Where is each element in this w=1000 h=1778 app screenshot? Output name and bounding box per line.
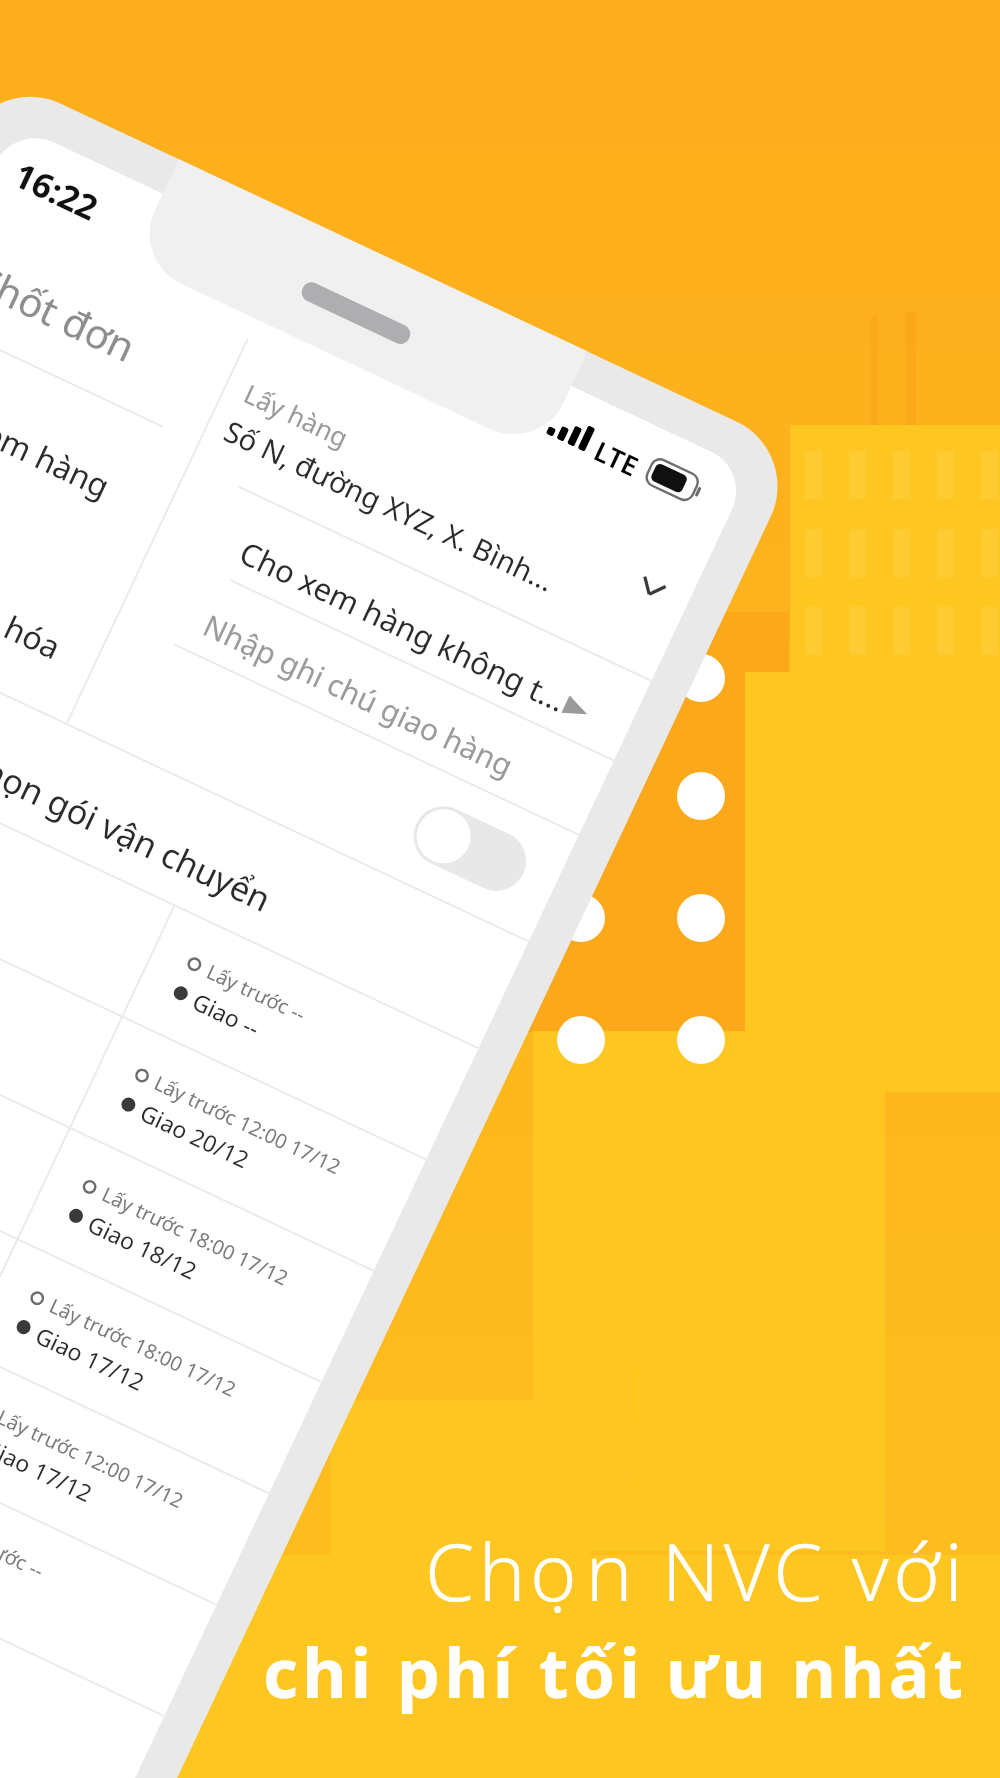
staticText: Số N, đường XYZ, X. Bình... (218, 411, 561, 600)
button[interactable] (0, 1035, 322, 1493)
staticText: Lấy trước -- (202, 958, 311, 1028)
staticText: Lấy trước 12:00 17/12 (150, 1069, 345, 1180)
staticText: LTE (588, 432, 645, 485)
button[interactable] (0, 1146, 270, 1604)
staticText: Lấy trước 12:00 17/12 (0, 1403, 188, 1514)
staticText: Chọn NVC với (425, 1517, 968, 1625)
staticText: Giao 17/12 (31, 1319, 150, 1397)
staticText: Giao -- (0, 1542, 3, 1600)
staticText: Chốt đơn (0, 250, 145, 373)
staticText: Lấy trước 18:00 17/12 (98, 1181, 293, 1291)
button[interactable] (0, 923, 374, 1381)
staticText: Cho xem hàng (0, 375, 117, 508)
staticText: Nhập ghi chú giao hàng (197, 605, 520, 786)
staticText: Giao 18/12 (83, 1208, 202, 1286)
staticText: Lấy hàng (239, 375, 354, 454)
staticText: Giá trị hàng hóa (0, 526, 68, 669)
staticText: Chọn gói vận chuyển (0, 738, 279, 922)
staticText: 16:22 (7, 151, 106, 231)
staticText: Lấy trước -- (0, 1514, 49, 1584)
button[interactable]: Chọn (561, 695, 591, 723)
button[interactable]: Chọn gói vận chuyển (404, 796, 536, 901)
staticText: chi phí tối ưu nhất (263, 1625, 968, 1718)
button[interactable] (0, 701, 479, 1159)
button[interactable]: Mở rộng (637, 575, 668, 601)
button[interactable] (0, 1257, 217, 1715)
staticText: Cho xem hàng không t... (233, 531, 573, 721)
staticText: Giao 17/12 (0, 1430, 98, 1508)
staticText: Lấy trước 18:00 17/12 (45, 1292, 240, 1403)
staticText: Giao 20/12 (136, 1096, 255, 1174)
staticText: Giao -- (188, 985, 265, 1043)
button[interactable] (0, 812, 427, 1270)
